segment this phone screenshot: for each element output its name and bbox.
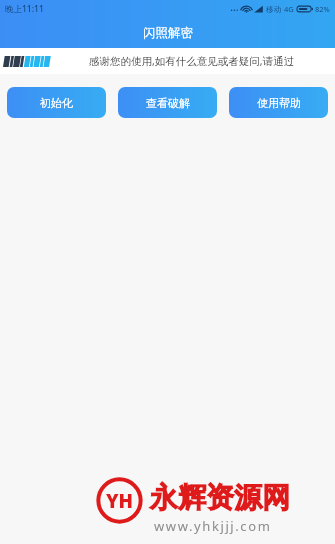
staticText: 初始化 [40, 96, 73, 110]
staticText: 感谢您的使用,如有什么意见或者疑问,请通过 [89, 54, 295, 68]
staticText: 永辉资源网 [150, 480, 290, 515]
button[interactable]: 查看破解 [118, 87, 217, 118]
staticText: 闪照解密 [143, 25, 193, 41]
staticText: 4G [284, 4, 294, 14]
staticText: www.yhkjjj.com [154, 517, 272, 535]
button[interactable]: 使用帮助 [229, 87, 328, 118]
staticText: 晚上11:11 [5, 3, 44, 15]
button[interactable]: 感谢您的使用,如有什么意见或者疑问,请通过 [0, 48, 335, 74]
staticText: 使用帮助 [257, 96, 301, 110]
staticText: YH [106, 488, 134, 514]
staticText: 移动 [266, 5, 281, 14]
staticText: 82% [315, 4, 330, 14]
button[interactable]: 初始化 [7, 87, 106, 118]
staticText: 查看破解 [146, 96, 190, 110]
